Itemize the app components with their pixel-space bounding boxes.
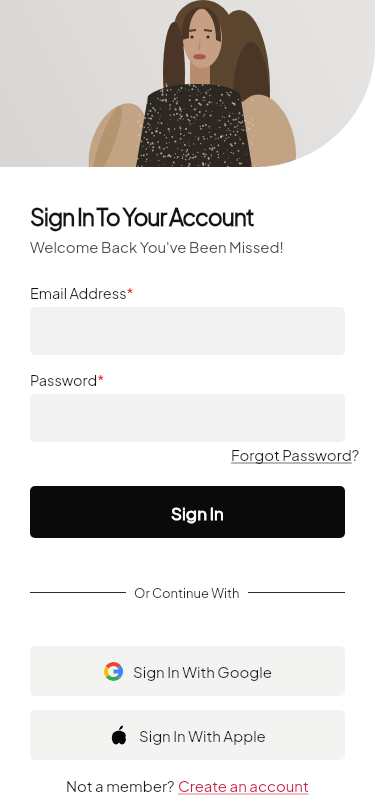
staticText: Create an account — [178, 776, 309, 795]
staticText: Forgot Password? — [231, 445, 360, 464]
button[interactable]: Forgot Password? — [231, 445, 360, 464]
staticText: Sign In With Apple — [139, 726, 266, 745]
button[interactable]: Sign In — [30, 486, 345, 538]
staticText: Sign In — [171, 502, 224, 523]
staticText: Sign In With Google — [133, 662, 272, 681]
button[interactable]: Sign In With Apple — [30, 710, 345, 760]
staticText: Sign In To Your Account — [30, 202, 254, 231]
staticText: Email Address* — [30, 284, 134, 302]
button[interactable]: Sign In With Google — [30, 646, 345, 696]
staticText: Welcome Back You've Been Missed! — [30, 237, 284, 256]
staticText: Or Continue With — [134, 585, 240, 601]
staticText: Not a member? — [66, 776, 178, 795]
staticText: Password* — [30, 371, 105, 389]
button[interactable]: Create an account — [178, 776, 309, 795]
